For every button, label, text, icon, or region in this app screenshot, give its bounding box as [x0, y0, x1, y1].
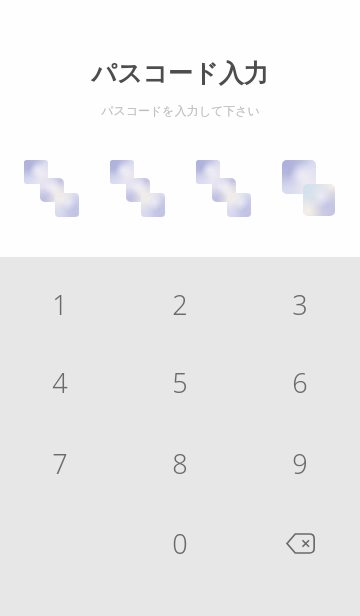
button[interactable]: 8: [120, 424, 240, 502]
staticText: パスコード入力: [91, 58, 269, 89]
button[interactable]: 6: [240, 343, 360, 421]
staticText: パスコードを入力して下さい: [101, 103, 260, 118]
staticText: 4: [52, 364, 68, 401]
staticText: 7: [52, 445, 68, 482]
button[interactable]: 0: [120, 504, 240, 582]
staticText: 8: [172, 445, 188, 482]
staticText: 9: [292, 445, 308, 482]
staticText: 2: [172, 286, 188, 323]
button[interactable]: 2: [120, 265, 240, 343]
staticText: 3: [292, 286, 308, 323]
button[interactable]: 7: [0, 424, 120, 502]
staticText: 1: [52, 286, 68, 323]
staticText: 6: [292, 364, 308, 401]
button[interactable]: 3: [240, 265, 360, 343]
button[interactable]: 1: [0, 265, 120, 343]
staticText: 5: [172, 364, 188, 401]
button[interactable]: 9: [240, 424, 360, 502]
staticText: 0: [172, 525, 188, 562]
button[interactable]: 4: [0, 343, 120, 421]
button[interactable]: Backspace: [240, 504, 360, 582]
button[interactable]: 5: [120, 343, 240, 421]
